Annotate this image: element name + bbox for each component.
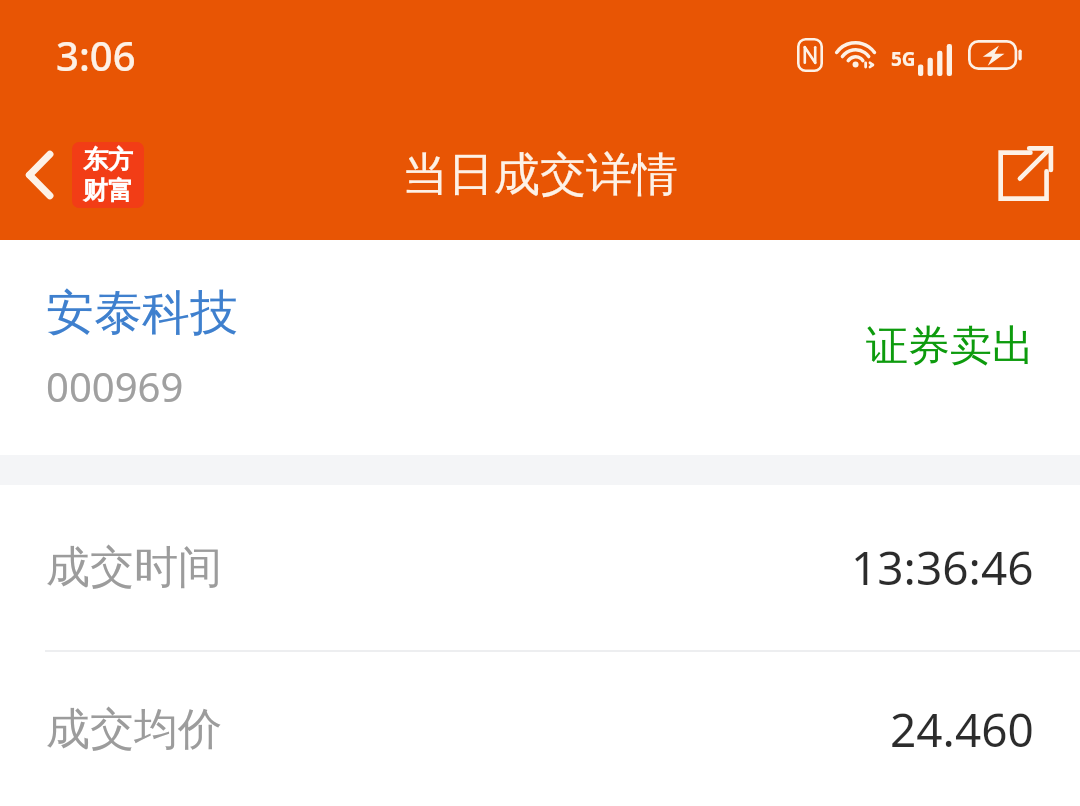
staticText: 成交均价 [46,702,222,757]
staticText: 证券卖出 [866,320,1034,373]
staticText: 5G [891,46,916,72]
button[interactable]: 安泰科技 [0,240,1080,455]
staticText: 13:36:46 [851,536,1034,599]
staticText: 财富 [83,175,133,206]
staticText: 东方 [83,144,133,175]
staticText: 安泰科技 [46,283,238,343]
button[interactable]: 成交时间 [0,485,1080,650]
button[interactable]: 成交均价 [0,652,1080,806]
staticText: 3:06 [56,28,136,82]
staticText: 24.460 [890,698,1034,761]
staticText: 当日成交详情 [402,146,678,204]
button[interactable]: Share [966,126,1080,224]
staticText: 成交时间 [46,540,222,595]
button[interactable]: Back [0,132,158,218]
staticText: 000969 [46,359,184,413]
